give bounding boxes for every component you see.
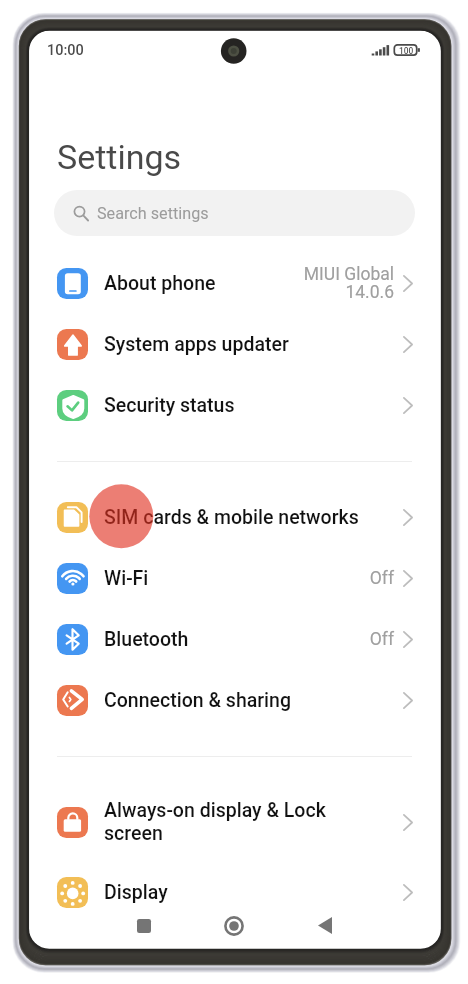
button[interactable]: Wi-Fi — [28, 548, 441, 609]
button[interactable]: Always-on display & Lock screen — [28, 782, 441, 862]
button[interactable]: Bluetooth — [28, 609, 441, 670]
staticText: System apps updater — [104, 333, 289, 356]
staticText: Connection & sharing — [104, 689, 292, 712]
button[interactable]: About phone — [28, 253, 441, 314]
staticText: Display — [104, 881, 168, 904]
staticText: Off — [369, 568, 394, 589]
button[interactable]: SIM cards & mobile networks — [28, 487, 441, 548]
button[interactable]: Back — [302, 905, 348, 946]
button[interactable]: Search settings — [54, 190, 415, 236]
button[interactable]: System apps updater — [28, 314, 441, 375]
staticText: Security status — [104, 394, 235, 417]
button[interactable]: Home — [211, 905, 257, 946]
staticText: MIUI Global 14.0.6 — [303, 264, 394, 303]
button[interactable]: Connection & sharing — [28, 670, 441, 731]
staticText: SIM cards & mobile networks — [104, 506, 359, 529]
staticText: Off — [369, 629, 394, 650]
staticText: 100 — [399, 46, 414, 56]
staticText: 10:00 — [47, 42, 84, 59]
button[interactable]: Recent apps — [121, 905, 167, 946]
staticText: Wi-Fi — [104, 567, 149, 590]
staticText: About phone — [104, 272, 216, 295]
button[interactable]: Security status — [28, 375, 441, 436]
staticText: Always-on display & Lock screen — [104, 799, 326, 845]
staticText: Search settings — [97, 204, 209, 223]
staticText: Bluetooth — [104, 628, 189, 651]
staticText: Settings — [57, 137, 182, 177]
button[interactable]: Display — [28, 862, 441, 923]
